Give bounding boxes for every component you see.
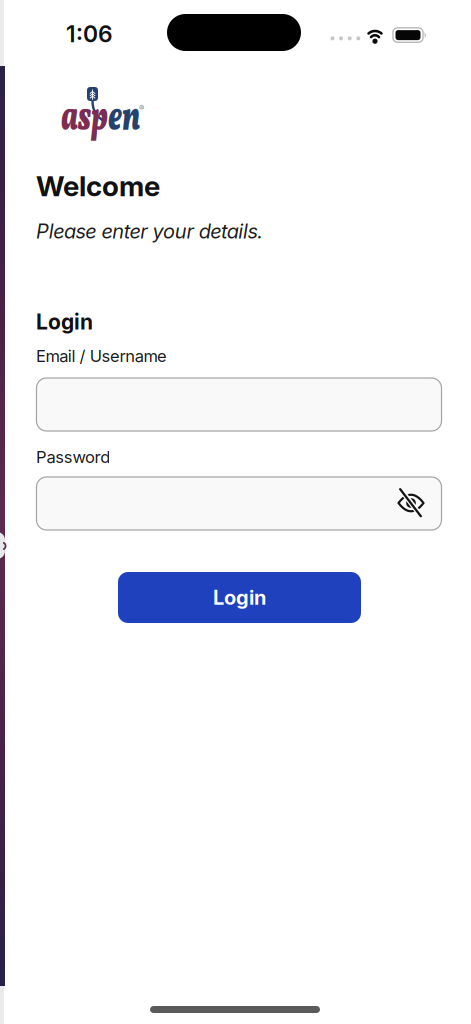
staticText: en — [108, 88, 140, 126]
staticText: Password — [36, 447, 110, 467]
staticText: ® — [139, 103, 144, 113]
button[interactable]: Login — [118, 572, 361, 623]
staticText: Welcome — [36, 169, 160, 203]
staticText: Login — [36, 309, 93, 334]
staticText: Login — [213, 585, 266, 610]
staticText: asp — [61, 88, 108, 126]
button[interactable]: Feedback — [0, 532, 5, 559]
staticText: Please enter your details. — [36, 219, 263, 243]
button[interactable]: Password — [36, 477, 441, 530]
button[interactable]: Email / Username — [36, 378, 441, 431]
button[interactable]: Show password — [391, 483, 431, 523]
staticText: Email / Username — [36, 346, 167, 366]
staticText: 1:06 — [66, 20, 113, 48]
